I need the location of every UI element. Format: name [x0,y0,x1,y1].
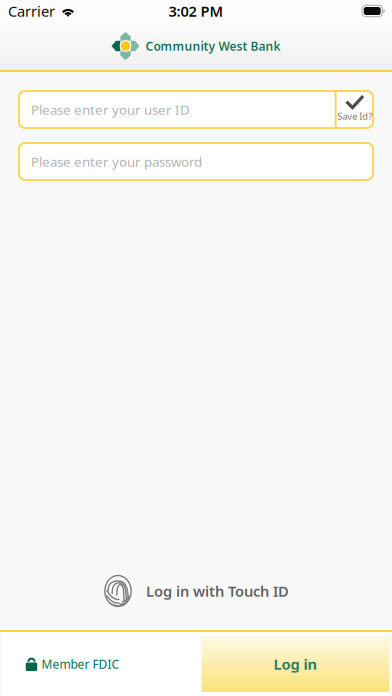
button[interactable]: Log in [201,636,389,692]
staticText: Please enter your password [31,153,202,170]
staticText: Please enter your user ID [31,101,190,118]
staticText: Member FDIC [41,656,119,672]
staticText: Community West Bank [145,38,280,54]
button[interactable]: Log in with Touch ID [103,574,289,608]
staticText: Carrier [8,1,55,21]
staticText: Save Id? [337,110,372,122]
staticText: 3:02 PM [168,1,223,21]
button[interactable]: Member FDIC [2,632,201,696]
staticText: Log in [273,654,317,674]
staticText: Log in with Touch ID [146,581,289,601]
button[interactable]: Save Id? [337,91,373,128]
